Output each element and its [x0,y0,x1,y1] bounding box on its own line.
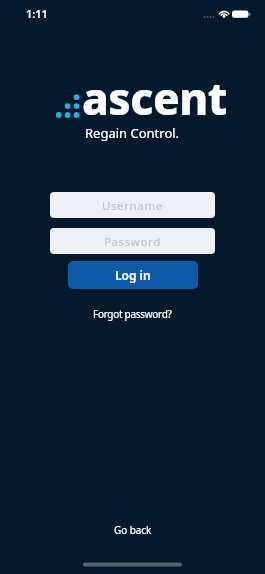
staticText: ascent [82,68,227,128]
button[interactable]: Go back [114,523,152,537]
staticText: Log in [115,267,151,283]
button[interactable]: Log in [68,261,198,289]
staticText: Regain Control. [85,124,180,142]
staticText: Username [102,198,163,214]
button[interactable]: Username [50,192,215,218]
button[interactable]: Password [50,228,215,254]
button[interactable]: Forgot password? [93,307,172,321]
staticText: 1:11 [26,6,48,21]
staticText: Password [104,234,161,250]
